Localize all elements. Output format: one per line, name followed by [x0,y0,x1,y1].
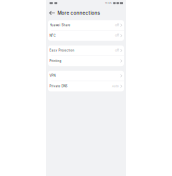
button[interactable]: Printing [48,56,124,66]
staticText: Auto [112,85,119,88]
staticText: Printing [50,59,62,63]
staticText: Huawei Share [50,23,71,27]
button[interactable]: Private DNS [48,81,124,91]
button[interactable]: VPN [48,71,124,81]
button[interactable]: Back [46,6,57,20]
staticText: VPN [50,74,56,78]
staticText: Off [115,49,119,52]
button[interactable]: NFC [48,30,124,41]
button[interactable]: Easy Projection [48,45,124,56]
staticText: 11:45 [105,1,112,5]
button[interactable]: Huawei Share [48,20,124,30]
staticText: NFC [50,34,56,37]
staticText: Private DNS [50,84,68,88]
staticText: Off [115,34,119,37]
staticText: Easy Projection [50,49,75,52]
staticText: Off [115,24,119,27]
staticText: More connections [57,10,100,16]
